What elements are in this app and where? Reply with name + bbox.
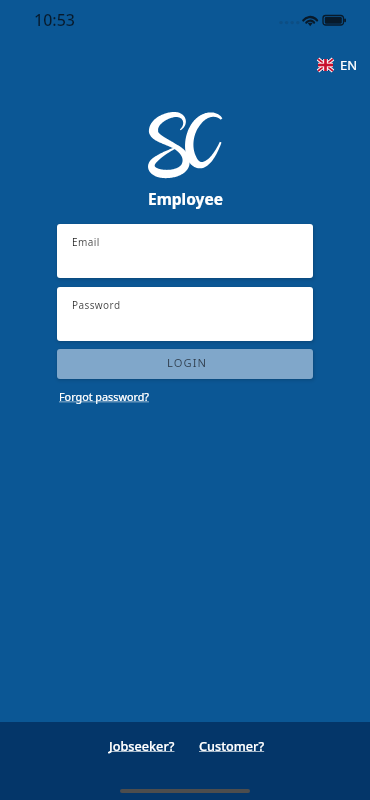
staticText: 10:53 — [34, 9, 75, 31]
staticText: Forgot password? — [59, 389, 149, 404]
staticText: Customer? — [199, 737, 265, 754]
button[interactable]: Customer? — [193, 731, 271, 760]
staticText: Password — [72, 298, 121, 312]
button[interactable]: LOGIN — [57, 349, 313, 379]
staticText: LOGIN — [167, 355, 208, 370]
button[interactable]: Email — [57, 224, 313, 278]
staticText: Email — [72, 235, 100, 249]
button[interactable]: Forgot password? — [57, 379, 153, 408]
button[interactable]: Select language English — [314, 53, 362, 77]
staticText: Jobseeker? — [109, 737, 175, 754]
button[interactable]: Password — [57, 287, 313, 341]
staticText: Employee — [148, 188, 223, 209]
staticText: EN — [340, 56, 358, 74]
button[interactable]: Jobseeker? — [103, 731, 181, 760]
